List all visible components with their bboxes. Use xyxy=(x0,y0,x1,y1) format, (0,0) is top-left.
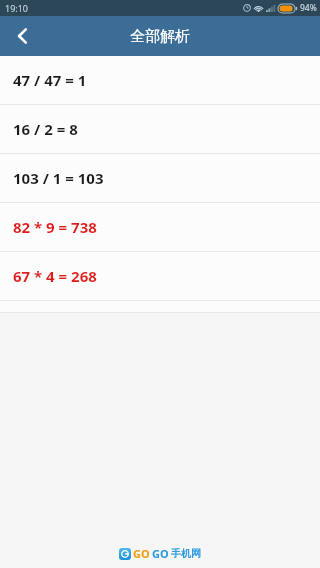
button[interactable]: 103 / 1 = 103 xyxy=(0,154,320,203)
button[interactable]: 16 / 2 = 8 xyxy=(0,105,320,154)
button[interactable]: 82 * 9 = 738 xyxy=(0,203,320,252)
staticText: GO xyxy=(152,546,169,561)
staticText: 94% xyxy=(300,2,317,14)
button[interactable]: 67 * 4 = 268 xyxy=(0,252,320,301)
staticText: 16 / 2 = 8 xyxy=(13,119,78,139)
staticText: GO xyxy=(133,546,150,561)
staticText: 全部解析 xyxy=(130,27,190,46)
staticText: 手机网 xyxy=(171,547,201,560)
staticText: 103 / 1 = 103 xyxy=(13,168,104,188)
button[interactable]: Back xyxy=(0,16,46,56)
staticText: 82 * 9 = 738 xyxy=(13,217,97,237)
staticText: 67 * 4 = 268 xyxy=(13,266,97,286)
staticText: 47 / 47 = 1 xyxy=(13,70,87,90)
button[interactable]: 47 / 47 = 1 xyxy=(0,56,320,105)
staticText: 19:10 xyxy=(5,2,29,14)
